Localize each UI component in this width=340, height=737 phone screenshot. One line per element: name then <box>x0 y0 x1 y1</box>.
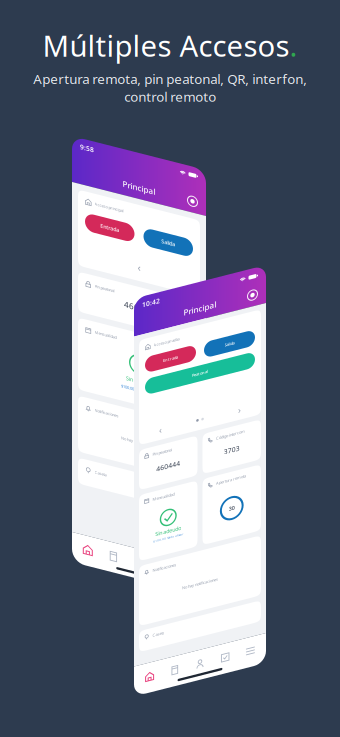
staticText: $100.00 Saldo a favor <box>121 371 157 376</box>
staticText: 460444 <box>156 470 180 479</box>
staticText: 10:42 <box>142 302 160 311</box>
button[interactable]: Inicio <box>75 537 101 555</box>
button[interactable]: Salida <box>204 360 255 376</box>
button[interactable]: Abrir acceso <box>187 165 198 176</box>
button[interactable]: Reservas <box>213 671 238 689</box>
staticText: ‹ <box>159 430 162 443</box>
staticText: Acceso principal <box>94 195 123 201</box>
staticText: . <box>289 26 297 65</box>
staticText: Acceso prueba <box>154 348 180 353</box>
staticText: Principal <box>183 320 216 330</box>
staticText: Notificaciones <box>94 402 118 407</box>
button[interactable]: Entrada <box>145 360 196 376</box>
button[interactable]: Reservas <box>152 537 177 555</box>
staticText: Mensualidad <box>94 324 116 329</box>
button[interactable]: Inicio <box>137 671 162 689</box>
staticText: Entrada <box>163 365 178 371</box>
button[interactable]: Menú <box>177 537 203 555</box>
staticText: Entrada <box>100 215 119 222</box>
staticText: 9:58 <box>80 140 94 149</box>
button[interactable]: Peatonal <box>145 382 255 398</box>
staticText: Pin peatonal <box>94 278 114 283</box>
staticText: Apertura remota, pin peatonal, QR, inter… <box>33 70 307 105</box>
staticText: 460444 <box>124 285 154 296</box>
staticText: Múltiples Accesos <box>42 26 289 65</box>
button[interactable]: Entrada <box>85 209 134 227</box>
button[interactable]: Salida <box>143 209 193 227</box>
staticText: 3703 <box>224 470 240 479</box>
staticText: No hay notificaciones <box>121 423 157 428</box>
button[interactable]: Pagos <box>162 671 187 689</box>
button[interactable]: Visitas <box>126 537 152 555</box>
staticText: Sin adeudo <box>126 361 152 368</box>
staticText: Sin adeudo <box>155 536 181 543</box>
button[interactable]: Visitas <box>187 671 213 689</box>
button[interactable]: Pagos <box>101 537 126 555</box>
staticText: › <box>238 430 241 443</box>
staticText: Principal <box>122 165 155 176</box>
staticText: Apertura remota <box>216 501 246 507</box>
